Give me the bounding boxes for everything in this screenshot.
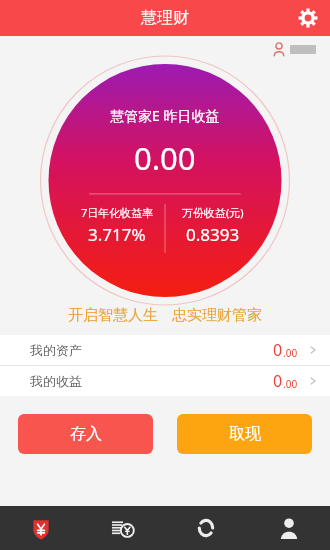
button[interactable]: Transfer bbox=[164, 506, 247, 550]
staticText: 0.8393 bbox=[186, 223, 240, 246]
button[interactable]: Finance bbox=[0, 506, 82, 550]
staticText: 取现 bbox=[229, 424, 261, 444]
button[interactable]: 存入 bbox=[18, 414, 153, 454]
staticText: 0.00 bbox=[134, 137, 196, 179]
staticText: .00 bbox=[283, 377, 298, 391]
staticText: 我的资产 bbox=[30, 342, 82, 358]
button[interactable]: Account bbox=[270, 40, 318, 58]
staticText: 3.717% bbox=[88, 223, 146, 246]
staticText: 7日年化收益率 bbox=[81, 205, 154, 220]
button[interactable]: 取现 bbox=[177, 414, 312, 454]
other: Account bbox=[272, 42, 286, 56]
staticText: 万份收益(元) bbox=[182, 205, 244, 220]
staticText: .00 bbox=[283, 346, 298, 360]
button[interactable]: 我的收益 bbox=[0, 366, 330, 396]
staticText: 0 bbox=[273, 370, 283, 392]
staticText: 0 bbox=[273, 339, 283, 361]
button[interactable]: Money bbox=[82, 506, 164, 550]
button[interactable]: Settings bbox=[292, 2, 324, 34]
staticText: 我的收益 bbox=[30, 373, 82, 389]
staticText: 慧理财 bbox=[141, 8, 189, 28]
button[interactable]: 我的资产 bbox=[0, 335, 330, 365]
staticText: 存入 bbox=[70, 424, 102, 444]
staticText: 忠实理财管家 bbox=[172, 306, 262, 325]
staticText: 开启智慧人生 bbox=[68, 306, 158, 325]
staticText: 慧管家E 昨日收益 bbox=[110, 106, 220, 125]
button[interactable]: Profile bbox=[247, 506, 330, 550]
